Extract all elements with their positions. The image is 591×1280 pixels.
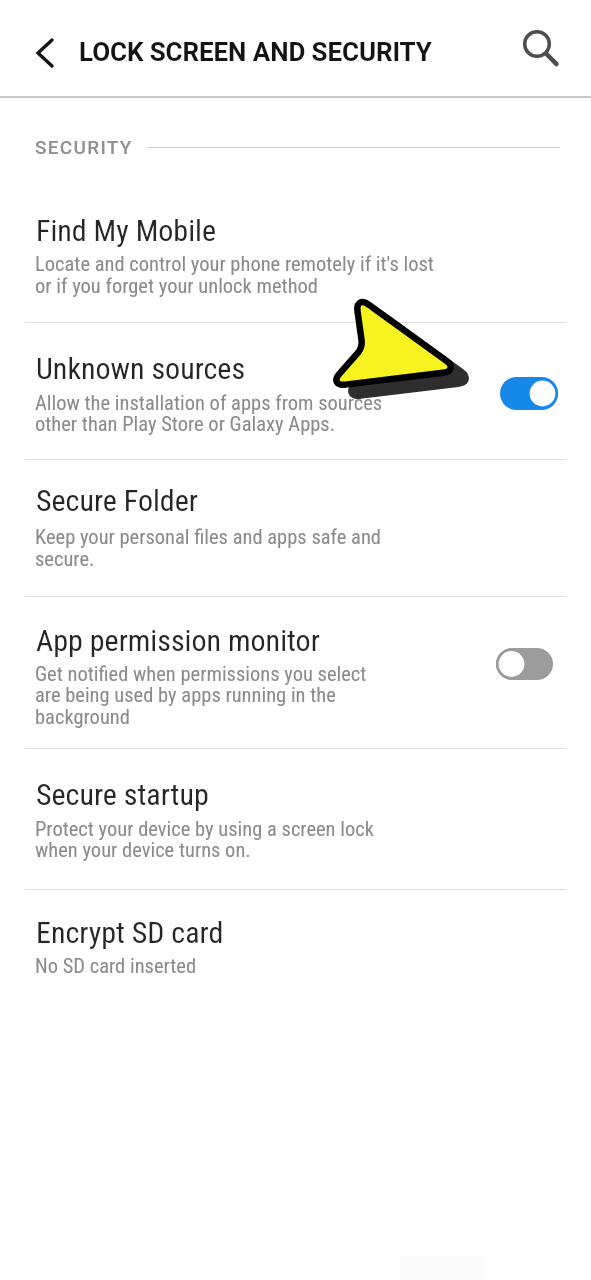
button[interactable] [495,372,563,414]
staticText: Keep your personal files and apps safe a… [35,525,382,549]
staticText: LOCK SCREEN AND SECURITY [79,37,432,67]
staticText: or if you forget your unlock method [35,274,319,298]
staticText: Get notified when permissions you select [35,662,367,686]
staticText: Allow the installation of apps from sour… [35,391,383,415]
button[interactable] [0,748,591,889]
staticText: Locate and control your phone remotely i… [35,252,434,276]
button[interactable] [491,643,559,685]
button[interactable] [20,28,70,78]
staticText: other than Play Store or Galaxy Apps. [35,412,336,436]
button[interactable] [0,459,591,596]
staticText: background [35,705,130,729]
staticText: No SD card inserted [35,954,197,978]
staticText: Encrypt SD card [36,915,224,950]
staticText: Secure Folder [36,483,198,518]
staticText: Find My Mobile [36,213,216,248]
staticText: Protect your device by using a screen lo… [35,817,374,841]
button[interactable] [0,596,591,748]
staticText: secure. [35,547,95,571]
button[interactable] [510,20,566,76]
button[interactable] [0,98,591,321]
button[interactable] [0,322,591,458]
staticText: when your device turns on. [35,838,251,862]
button[interactable] [0,889,591,1019]
staticText: are being used by apps running in the [35,683,336,707]
staticText: Unknown sources [36,351,246,386]
staticText: App permission monitor [36,623,320,658]
staticText: SECURITY [35,136,133,158]
staticText: Secure startup [36,777,209,812]
